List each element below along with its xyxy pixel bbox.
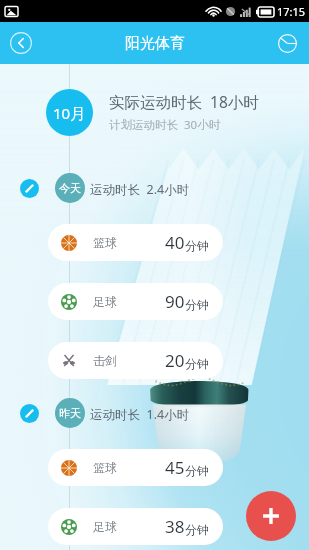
staticText: 昨天 bbox=[59, 406, 81, 420]
staticText: 20 bbox=[165, 349, 185, 372]
staticText: 90 bbox=[165, 290, 185, 313]
button[interactable]: 击剑 bbox=[48, 342, 223, 379]
staticText: 击剑 bbox=[93, 353, 117, 368]
staticText: 计划运动时长 30小时 bbox=[109, 117, 221, 133]
staticText: 阳光体育 bbox=[125, 34, 185, 53]
button[interactable]: Edit bbox=[20, 404, 39, 423]
button[interactable]: 足球 bbox=[48, 508, 223, 545]
staticText: 45 bbox=[165, 456, 185, 479]
button[interactable]: 足球 bbox=[48, 283, 223, 320]
staticText: 足球 bbox=[93, 519, 117, 534]
button[interactable]: Back bbox=[8, 30, 34, 56]
button[interactable]: Statistics bbox=[274, 30, 300, 56]
staticText: 分钟 bbox=[185, 297, 209, 312]
staticText: 17:15 bbox=[277, 4, 306, 19]
staticText: 分钟 bbox=[185, 522, 209, 537]
button[interactable]: 篮球 bbox=[48, 224, 223, 261]
staticText: 运动时长 1.4小时 bbox=[90, 406, 190, 423]
staticText: 38 bbox=[165, 515, 185, 538]
staticText: 分钟 bbox=[185, 463, 209, 478]
staticText: 40 bbox=[165, 231, 185, 254]
button[interactable]: Edit bbox=[20, 179, 39, 198]
staticText: 分钟 bbox=[185, 356, 209, 371]
staticText: 10月 bbox=[53, 103, 86, 123]
staticText: 分钟 bbox=[185, 238, 209, 253]
staticText: 实际运动时长 18小时 bbox=[109, 91, 259, 112]
staticText: 篮球 bbox=[93, 235, 117, 250]
staticText: 篮球 bbox=[93, 460, 117, 475]
staticText: 今天 bbox=[59, 181, 81, 195]
button[interactable]: 篮球 bbox=[48, 449, 223, 486]
staticText: 运动时长 2.4小时 bbox=[90, 181, 190, 198]
button[interactable]: Add activity bbox=[246, 491, 296, 541]
staticText: 足球 bbox=[93, 294, 117, 309]
